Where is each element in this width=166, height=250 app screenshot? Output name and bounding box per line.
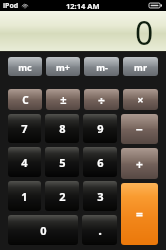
staticText: 3 — [97, 189, 104, 204]
staticText: ÷ — [98, 92, 105, 108]
staticText: . — [98, 221, 102, 239]
staticText: − — [136, 121, 143, 137]
staticText: + — [136, 156, 143, 172]
staticText: 7 — [21, 121, 28, 136]
button[interactable]: 8 — [45, 114, 79, 143]
button[interactable]: 9 — [83, 114, 117, 143]
button[interactable]: − — [121, 114, 158, 144]
staticText: mc — [18, 61, 32, 73]
button[interactable]: 3 — [83, 181, 117, 211]
button[interactable]: × — [123, 89, 158, 110]
staticText: 1 — [21, 189, 28, 204]
staticText: 12:14 AM — [66, 1, 100, 11]
staticText: 0 — [40, 223, 47, 238]
other: Battery — [149, 2, 162, 9]
staticText: 4 — [21, 155, 28, 170]
button[interactable]: ÷ — [84, 89, 119, 110]
button[interactable]: m+ — [46, 57, 80, 76]
button[interactable]: 5 — [45, 147, 79, 177]
button[interactable]: ± — [46, 89, 80, 110]
staticText: iPod — [3, 1, 19, 11]
staticText: 9 — [97, 121, 104, 136]
staticText: × — [137, 92, 144, 107]
button[interactable]: 6 — [83, 147, 117, 177]
staticText: 5 — [59, 155, 66, 170]
staticText: m- — [96, 61, 108, 73]
button[interactable]: mc — [8, 57, 42, 76]
staticText: 8 — [59, 121, 66, 136]
staticText: ± — [60, 92, 67, 107]
button[interactable]: + — [121, 148, 158, 179]
button[interactable]: 1 — [8, 181, 41, 211]
button[interactable]: m- — [84, 57, 119, 76]
staticText: 2 — [59, 189, 66, 204]
button[interactable]: 4 — [8, 147, 41, 177]
staticText: = — [136, 206, 143, 222]
staticText: 0 — [135, 11, 154, 51]
button[interactable]: mr — [123, 57, 158, 76]
button[interactable]: 7 — [8, 114, 41, 143]
button[interactable]: . — [82, 215, 117, 245]
staticText: mr — [134, 61, 147, 73]
button[interactable]: 2 — [45, 181, 79, 211]
button[interactable]: = — [121, 183, 158, 245]
button[interactable]: C — [8, 89, 42, 110]
button[interactable]: 0 — [8, 215, 78, 245]
staticText: 6 — [97, 155, 104, 170]
staticText: m+ — [56, 61, 70, 73]
staticText: C — [22, 93, 29, 107]
